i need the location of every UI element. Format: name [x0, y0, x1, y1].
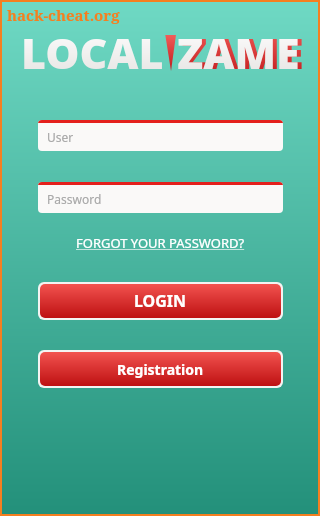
staticText: ZAME — [181, 23, 304, 82]
button[interactable]: Password — [38, 182, 283, 213]
button[interactable]: LOGIN — [40, 284, 281, 318]
button[interactable]: FORGOT YOUR PASSWORD? — [68, 229, 253, 257]
staticText: hack-cheat.org — [7, 5, 120, 25]
staticText: LOGIN — [134, 290, 187, 312]
staticText: Registration — [117, 360, 204, 379]
staticText: Password — [47, 191, 102, 207]
staticText: ZAME — [177, 23, 300, 82]
staticText: FORGOT YOUR PASSWORD? — [76, 234, 245, 252]
staticText: User — [47, 129, 74, 145]
staticText: LOCAL — [21, 23, 164, 82]
button[interactable]: User — [38, 120, 283, 151]
button[interactable]: Registration — [40, 352, 281, 386]
